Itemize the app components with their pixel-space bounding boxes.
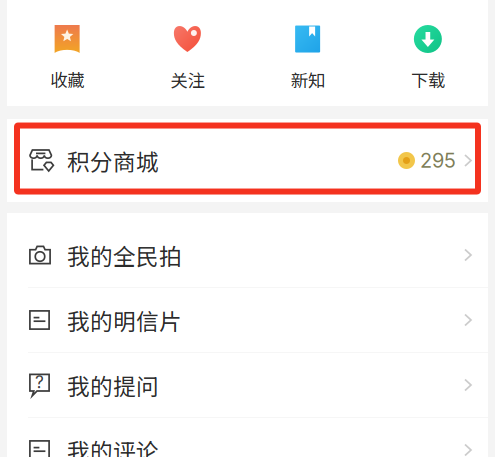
staticText: 收藏	[50, 67, 84, 92]
staticText: 新知	[291, 67, 325, 92]
button[interactable]: 我的明信片	[7, 288, 488, 352]
staticText: 积分商城	[67, 144, 159, 177]
button[interactable]: ?	[7, 353, 488, 417]
staticText: 下载	[411, 67, 445, 92]
staticText: 我的明信片	[67, 304, 182, 336]
staticText: 我的提问	[67, 369, 159, 401]
button[interactable]: 关注	[127, 25, 247, 92]
button[interactable]: 收藏	[7, 25, 127, 92]
staticText: 我的全民拍	[67, 239, 182, 271]
button[interactable]: 我的全民拍	[7, 223, 488, 287]
staticText: ?	[35, 371, 44, 392]
staticText: 我的评论	[67, 434, 159, 457]
button[interactable]: 我的评论	[7, 418, 488, 457]
button[interactable]: 下载	[368, 25, 488, 92]
button[interactable]: 新知	[247, 25, 368, 92]
staticText: 295	[420, 148, 456, 173]
staticText: 关注	[170, 67, 204, 92]
button[interactable]: 积分商城	[7, 119, 488, 202]
